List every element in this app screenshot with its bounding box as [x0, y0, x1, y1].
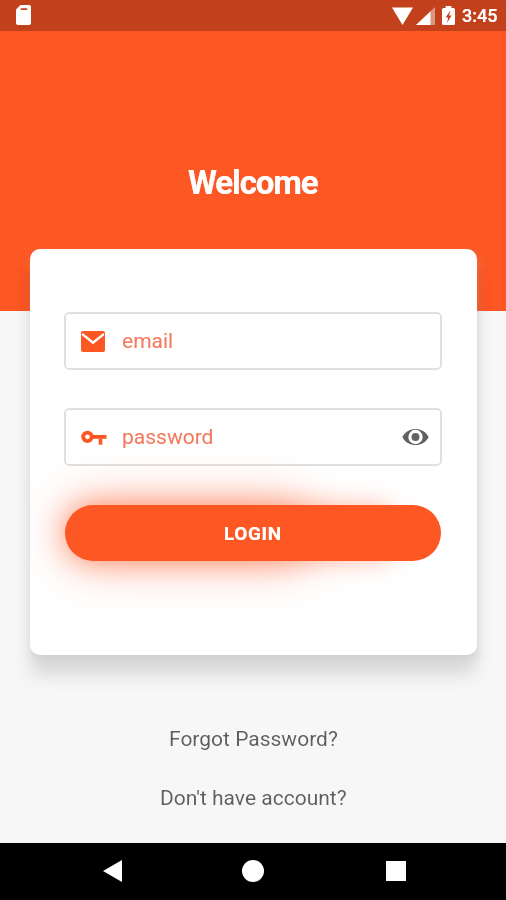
- button[interactable]: LOGIN: [65, 505, 441, 561]
- staticText: email: [122, 329, 174, 354]
- button[interactable]: Home: [225, 844, 281, 898]
- staticText: password: [122, 425, 214, 450]
- staticText: 3:45: [462, 5, 498, 26]
- button[interactable]: password: [64, 408, 442, 466]
- staticText: LOGIN: [224, 522, 282, 544]
- button[interactable]: Recent apps: [368, 844, 424, 898]
- staticText: Welcome: [188, 163, 318, 202]
- staticText: Don't have account?: [160, 786, 347, 811]
- staticText: Forgot Password?: [169, 727, 338, 752]
- button[interactable]: Show password: [400, 422, 430, 452]
- button[interactable]: Don't have account?: [150, 780, 357, 817]
- button[interactable]: Back: [84, 844, 140, 898]
- button[interactable]: email: [64, 312, 442, 370]
- button[interactable]: Forgot Password?: [159, 721, 348, 758]
